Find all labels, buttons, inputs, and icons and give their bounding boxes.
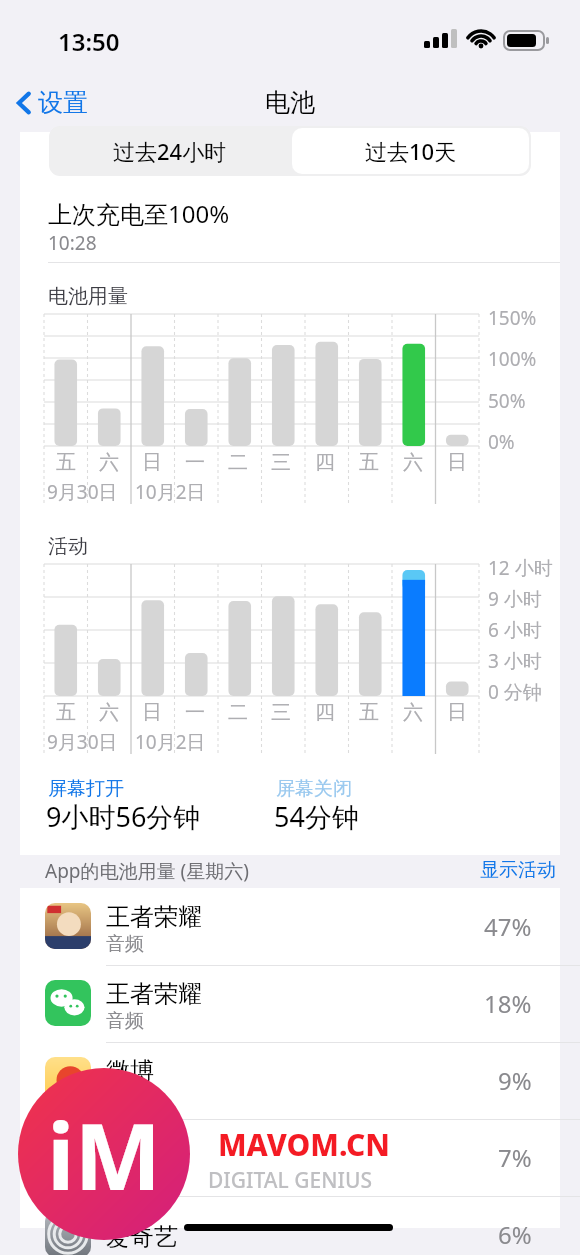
- staticText: 3 小时: [488, 648, 542, 674]
- staticText: 6%: [498, 1218, 532, 1251]
- staticText: 日: [142, 700, 162, 725]
- staticText: 二: [228, 700, 248, 725]
- staticText: 设置: [38, 87, 88, 118]
- staticText: 10:28: [48, 230, 97, 256]
- staticText: 日: [142, 450, 162, 475]
- staticText: 一: [185, 700, 205, 725]
- button[interactable]: 微博: [20, 1042, 560, 1119]
- staticText: 一: [185, 450, 205, 475]
- staticText: 六: [403, 450, 423, 475]
- staticText: 微博: [106, 1056, 154, 1086]
- staticText: iM: [47, 1092, 162, 1217]
- staticText: 日: [447, 700, 467, 725]
- staticText: 三: [271, 450, 291, 475]
- staticText: 爱奇艺: [106, 1222, 178, 1252]
- staticText: 六: [99, 450, 119, 475]
- staticText: 电池用量: [48, 284, 128, 309]
- staticText: 150%: [488, 305, 537, 331]
- staticText: 100%: [488, 346, 537, 372]
- staticText: 过去24小时: [113, 136, 227, 166]
- staticText: 活动: [48, 534, 88, 559]
- button[interactable]: 王者荣耀: [20, 965, 560, 1042]
- staticText: 四: [315, 450, 335, 475]
- button[interactable]: 设置: [10, 81, 94, 124]
- staticText: 13:50: [58, 25, 120, 58]
- staticText: 9小时56分钟: [46, 798, 201, 835]
- staticText: 五: [56, 450, 76, 475]
- staticText: 9%: [498, 1064, 532, 1097]
- staticText: 6 小时: [488, 617, 542, 643]
- staticText: 网易: [106, 1133, 154, 1163]
- staticText: 9月30日: [47, 479, 118, 505]
- staticText: 过去10天: [365, 136, 457, 166]
- button[interactable]: 显示活动: [476, 855, 560, 885]
- staticText: 王者荣耀: [106, 902, 202, 932]
- staticText: 二: [228, 450, 248, 475]
- staticText: 六: [403, 700, 423, 725]
- button[interactable]: 网易: [20, 1119, 560, 1196]
- staticText: 显示活动: [480, 858, 556, 882]
- staticText: 日: [447, 450, 467, 475]
- staticText: App的电池用量 (星期六): [45, 858, 249, 884]
- staticText: 音频: [106, 932, 144, 956]
- staticText: 54分钟: [274, 798, 359, 835]
- staticText: 10月2日: [135, 729, 206, 755]
- button[interactable]: 过去10天: [292, 128, 529, 174]
- button[interactable]: 王者荣耀: [20, 888, 560, 965]
- staticText: 音频: [106, 1009, 144, 1033]
- staticText: 五: [359, 450, 379, 475]
- staticText: 50%: [488, 388, 526, 414]
- staticText: 18%: [484, 987, 532, 1020]
- staticText: MAVOM.CN: [218, 1124, 390, 1165]
- button[interactable]: 过去24小时: [49, 126, 290, 176]
- staticText: 五: [56, 700, 76, 725]
- staticText: 10月2日: [135, 479, 206, 505]
- button[interactable]: 爱奇艺: [20, 1196, 560, 1255]
- staticText: 9月30日: [47, 729, 118, 755]
- staticText: 六: [99, 700, 119, 725]
- staticText: 0%: [488, 429, 515, 455]
- staticText: 0 分钟: [488, 679, 542, 705]
- staticText: 五: [359, 700, 379, 725]
- staticText: 屏幕打开: [48, 777, 124, 801]
- staticText: 上次充电至100%: [48, 197, 230, 230]
- staticText: 四: [315, 700, 335, 725]
- staticText: 王者荣耀: [106, 979, 202, 1009]
- staticText: 音频: [106, 1163, 144, 1187]
- staticText: 屏幕关闭: [276, 777, 352, 801]
- staticText: 12 小时: [488, 555, 553, 581]
- staticText: 电池: [265, 87, 315, 118]
- staticText: 三: [271, 700, 291, 725]
- staticText: 7%: [498, 1141, 532, 1174]
- staticText: DIGITAL GENIUS: [208, 1166, 372, 1195]
- staticText: 47%: [484, 910, 532, 943]
- staticText: 9 小时: [488, 586, 542, 612]
